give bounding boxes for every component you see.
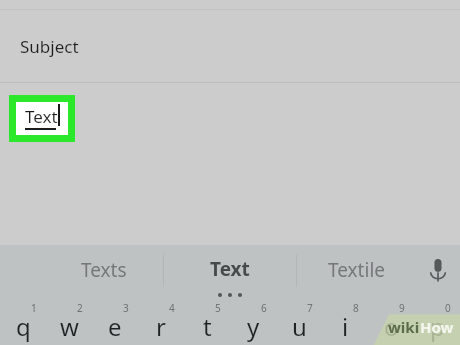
button[interactable]: Text [164, 245, 296, 300]
staticText: Textile [328, 257, 386, 283]
staticText: 3 [123, 301, 129, 315]
staticText: o [384, 310, 399, 343]
button[interactable]: Text [16, 102, 68, 135]
button[interactable]: Voice input [416, 245, 460, 295]
staticText: q [16, 310, 31, 343]
staticText: t [203, 310, 212, 343]
button[interactable]: 7 [276, 300, 322, 345]
staticText: 8 [353, 301, 359, 315]
staticText: 6 [261, 301, 267, 315]
staticText: 2 [77, 301, 83, 315]
staticText: 4 [169, 301, 175, 315]
staticText: Text [210, 256, 250, 282]
staticText: Texts [81, 257, 127, 283]
button[interactable]: Textile [297, 245, 417, 295]
staticText: How [420, 317, 454, 337]
staticText: e [108, 310, 122, 343]
staticText: wiki [388, 317, 420, 337]
button[interactable]: 6 [230, 300, 276, 345]
staticText: 5 [215, 301, 221, 315]
staticText: 9 [399, 301, 405, 315]
button[interactable]: 8 [322, 300, 368, 345]
staticText: Text [25, 105, 58, 128]
staticText: 1 [31, 301, 37, 315]
button[interactable]: 0 [414, 300, 460, 345]
button[interactable]: 3 [92, 300, 138, 345]
staticText: 0 [445, 301, 451, 315]
button[interactable]: 9 [368, 300, 414, 345]
staticText: u [292, 310, 307, 343]
button[interactable]: 5 [184, 300, 230, 345]
staticText: w [60, 310, 79, 343]
staticText: 7 [307, 301, 313, 315]
button[interactable]: 1 [0, 300, 46, 345]
button[interactable]: Texts [44, 245, 163, 295]
button[interactable]: 2 [46, 300, 92, 345]
staticText: i [342, 310, 349, 343]
staticText: r [156, 310, 166, 343]
button[interactable]: 4 [138, 300, 184, 345]
staticText: y [247, 310, 260, 343]
staticText: Subject [20, 35, 79, 58]
button[interactable]: Subject [0, 10, 460, 82]
staticText: p [430, 310, 445, 343]
